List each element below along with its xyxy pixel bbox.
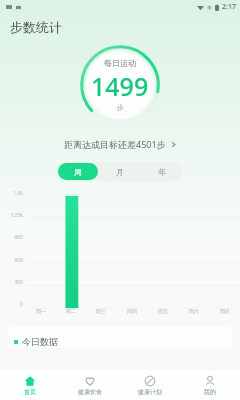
staticText: 周二 xyxy=(66,308,76,314)
staticText: 每日运动 xyxy=(104,58,136,68)
staticText: 周三 xyxy=(96,308,106,314)
staticText: 1.25k xyxy=(10,212,23,219)
staticText: 900 xyxy=(14,234,23,241)
staticText: 今日数据 xyxy=(22,336,58,347)
staticText: 周日 xyxy=(220,308,230,314)
button[interactable]: 月 xyxy=(100,163,140,180)
button[interactable]: 健康计划 xyxy=(120,370,180,400)
button[interactable]: 周 xyxy=(58,163,98,180)
staticText: 年 xyxy=(158,167,166,177)
button[interactable]: 年 xyxy=(142,163,182,180)
button[interactable]: 首页 xyxy=(0,370,60,400)
staticText: 600 xyxy=(14,257,23,264)
staticText: 月 xyxy=(116,167,124,177)
staticText: 周六 xyxy=(189,308,199,314)
staticText: 距离达成目标还差4501步 xyxy=(64,138,166,150)
staticText: 健康饮食 xyxy=(78,388,102,396)
button[interactable]: 健康饮食 xyxy=(60,370,120,400)
staticText: 1499 xyxy=(91,69,149,103)
staticText: 周一 xyxy=(36,308,46,314)
staticText: 步 xyxy=(117,103,124,112)
staticText: 1.5k xyxy=(13,190,23,197)
staticText: 首页 xyxy=(24,388,36,396)
button[interactable]: 我的 xyxy=(180,370,240,400)
staticText: 0 xyxy=(20,301,23,308)
other: 健康饮食 xyxy=(84,375,96,387)
button[interactable]: 距离达成目标还差4501步 xyxy=(0,133,240,155)
button[interactable]: 今日数据 xyxy=(8,326,232,348)
staticText: 我的 xyxy=(204,388,216,396)
staticText: 周 xyxy=(74,167,82,177)
staticText: 2:17 xyxy=(222,2,236,12)
other: 健康计划 xyxy=(144,375,156,387)
staticText: 健康计划 xyxy=(138,388,162,396)
staticText: 300 xyxy=(14,279,23,286)
staticText: 周四 xyxy=(127,308,137,314)
other: 我的 xyxy=(204,375,216,387)
other: 首页 xyxy=(24,375,36,387)
staticText: 步数统计 xyxy=(10,19,62,35)
staticText: 周五 xyxy=(158,308,168,314)
